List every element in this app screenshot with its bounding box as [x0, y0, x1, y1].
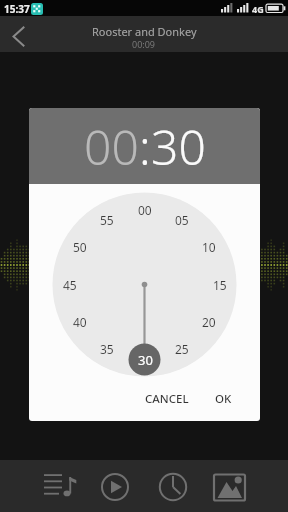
button[interactable]: OK [201, 384, 246, 414]
staticText: : [139, 114, 151, 179]
staticText: 35 [100, 341, 114, 357]
staticText: 50 [73, 239, 87, 255]
staticText: 05 [175, 212, 189, 228]
button[interactable] [40, 466, 82, 508]
staticText: 45 [63, 277, 77, 293]
button[interactable] [94, 466, 136, 508]
staticText: 55 [100, 212, 114, 228]
staticText: 00 [138, 202, 152, 218]
staticText: 30 [151, 114, 206, 179]
staticText: 00:09 [132, 38, 156, 50]
staticText: 25 [175, 341, 189, 357]
staticText: 10 [202, 239, 216, 255]
staticText: 20 [202, 314, 216, 330]
staticText: Rooster and Donkey [92, 24, 197, 39]
button[interactable]: CANCEL [137, 384, 197, 414]
staticText: OK [215, 391, 232, 407]
button[interactable] [0, 16, 36, 52]
button[interactable] [208, 466, 250, 508]
staticText: 15 [213, 277, 227, 293]
staticText: 30 [138, 351, 153, 369]
staticText: 40 [73, 314, 87, 330]
staticText: 4G [252, 3, 264, 15]
staticText: 00 [84, 114, 139, 179]
button[interactable] [152, 466, 194, 508]
staticText: 15:37 [4, 2, 30, 16]
staticText: CANCEL [145, 391, 189, 407]
